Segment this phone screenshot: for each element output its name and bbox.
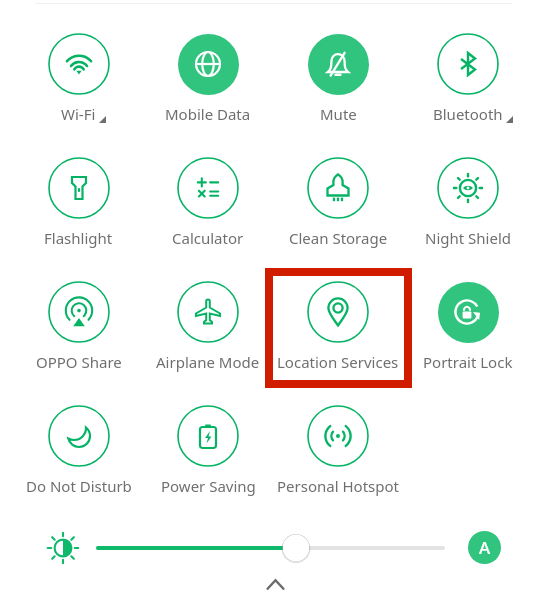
staticText: Location Services: [277, 352, 399, 372]
staticText: Portrait Lock: [423, 352, 513, 372]
staticText: Do Not Disturb: [26, 476, 132, 496]
button[interactable]: Wi-Fi: [14, 33, 143, 124]
staticText: Calculator: [172, 228, 244, 248]
button[interactable]: Auto brightness: [468, 531, 501, 564]
button[interactable]: Brightness: [44, 529, 82, 567]
button[interactable]: Personal Hotspot: [273, 405, 403, 496]
button[interactable]: Bluetooth: [403, 33, 533, 124]
staticText: Power Saving: [161, 476, 256, 496]
button[interactable]: Calculator: [143, 157, 273, 248]
button[interactable]: Airplane Mode: [143, 281, 273, 372]
button[interactable]: Night Shield: [403, 157, 533, 248]
button[interactable]: Expand quick settings: [259, 568, 291, 600]
staticText: Flashlight: [44, 228, 113, 248]
staticText: OPPO Share: [36, 352, 122, 372]
staticText: Mobile Data: [165, 104, 251, 124]
button[interactable]: OPPO Share: [14, 281, 143, 372]
staticText: A: [479, 536, 491, 559]
staticText: Night Shield: [425, 228, 512, 248]
button[interactable]: Mobile Data: [143, 33, 273, 124]
button[interactable]: Flashlight: [14, 157, 143, 248]
staticText: Bluetooth: [433, 104, 503, 124]
staticText: Personal Hotspot: [277, 476, 399, 496]
staticText: Wi-Fi: [61, 104, 96, 124]
button[interactable]: Location Services: [273, 281, 403, 372]
button[interactable]: Do Not Disturb: [14, 405, 143, 496]
button[interactable]: Clean Storage: [273, 157, 403, 248]
button[interactable]: Power Saving: [143, 405, 273, 496]
button[interactable]: Mute: [273, 33, 403, 124]
staticText: Airplane Mode: [156, 352, 260, 372]
button[interactable]: Portrait Lock: [403, 281, 533, 372]
button[interactable]: Brightness slider: [88, 528, 453, 568]
staticText: Clean Storage: [289, 228, 388, 248]
staticText: Mute: [320, 104, 357, 124]
